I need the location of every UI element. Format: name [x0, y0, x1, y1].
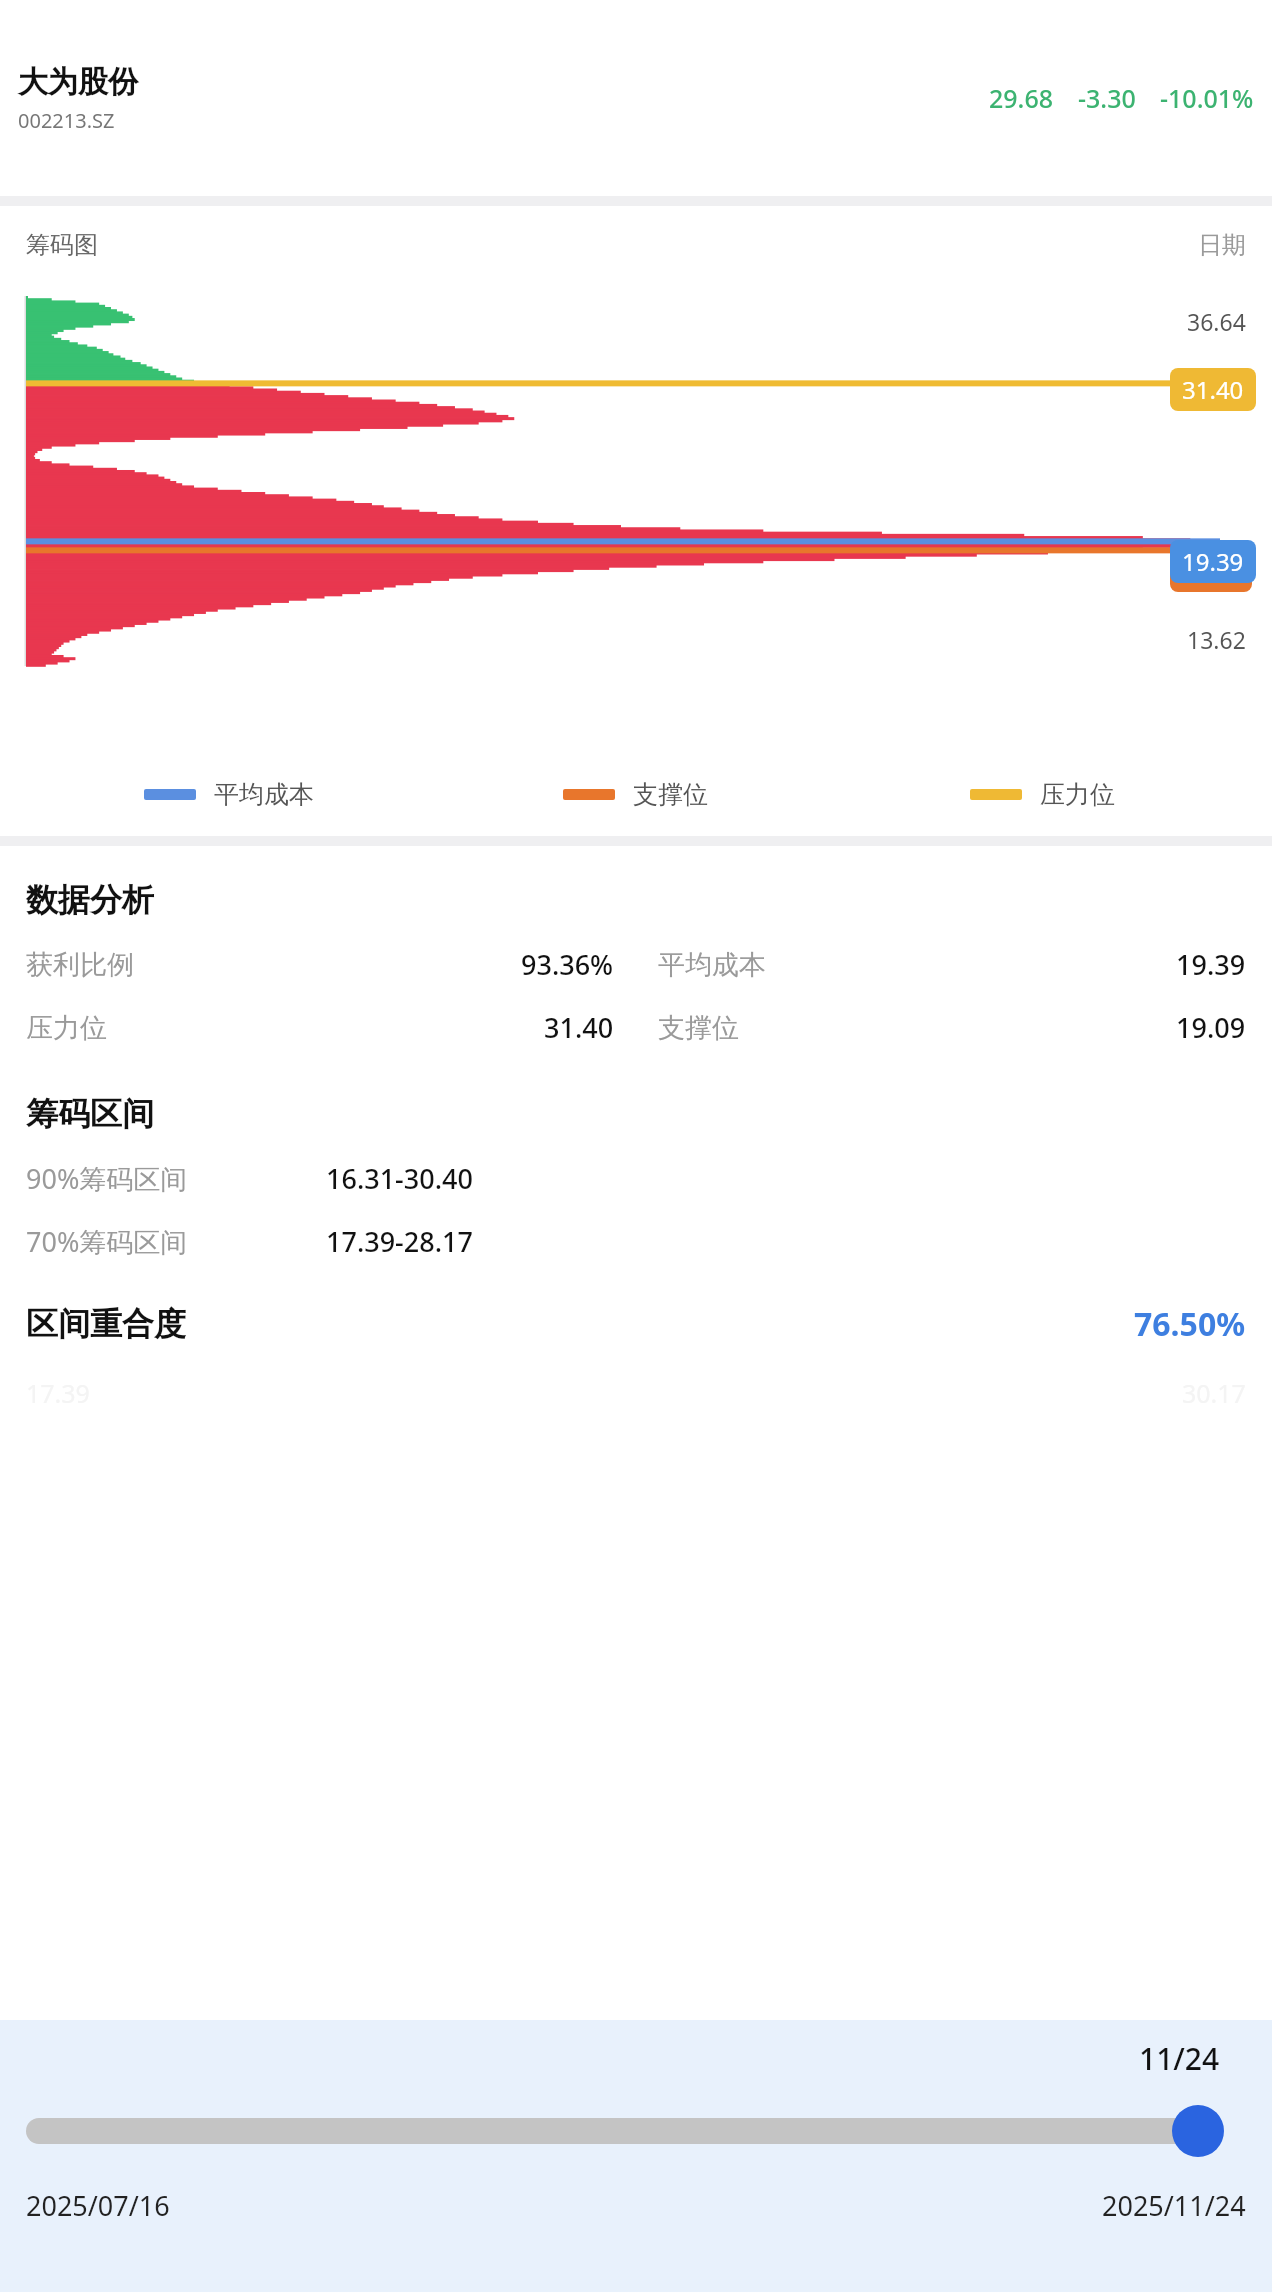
- staticText: -10.01%: [1160, 81, 1254, 115]
- staticText: 19.39: [1176, 946, 1246, 983]
- staticText: 支撑位: [658, 1011, 739, 1045]
- staticText: 36.64: [1187, 306, 1246, 337]
- staticText: 平均成本: [658, 948, 766, 982]
- staticText: 筹码图: [26, 230, 98, 260]
- staticText: 筹码区间: [26, 1094, 154, 1134]
- button[interactable]: Date slider: [26, 2101, 1246, 2161]
- staticText: 31.40: [1182, 373, 1244, 406]
- staticText: 13.62: [1187, 624, 1246, 655]
- staticText: 19.09: [1176, 1009, 1246, 1046]
- staticText: 区间重合度: [26, 1304, 186, 1344]
- button[interactable]: 压力位: [26, 1009, 614, 1046]
- staticText: 93.36%: [521, 946, 614, 983]
- button[interactable]: 平均成本: [26, 779, 432, 810]
- staticText: 29.68: [989, 81, 1054, 115]
- staticText: 002213.SZ: [18, 107, 115, 134]
- staticText: 30.17: [1182, 1376, 1246, 1410]
- button[interactable]: 90%筹码区间: [26, 1160, 1246, 1197]
- staticText: 76.50%: [1134, 1302, 1246, 1346]
- button[interactable]: 压力位: [839, 779, 1246, 810]
- staticText: 压力位: [1040, 779, 1115, 810]
- staticText: 17.39: [26, 1376, 90, 1410]
- staticText: 2025/07/16: [26, 2187, 170, 2224]
- staticText: 获利比例: [26, 948, 134, 982]
- staticText: 19.39: [1182, 545, 1244, 578]
- button[interactable]: 平均成本: [658, 946, 1246, 983]
- staticText: 16.31-30.40: [326, 1160, 473, 1197]
- staticText: 70%筹码区间: [26, 1223, 188, 1260]
- button[interactable]: 支撑位: [432, 779, 839, 810]
- staticText: 数据分析: [26, 880, 154, 920]
- staticText: 90%筹码区间: [26, 1160, 188, 1197]
- button[interactable]: 获利比例: [26, 946, 614, 983]
- staticText: 2025/11/24: [1102, 2187, 1246, 2224]
- staticText: 日期: [1198, 230, 1246, 260]
- button[interactable]: 70%筹码区间: [26, 1223, 1246, 1260]
- staticText: 17.39-28.17: [326, 1223, 473, 1260]
- staticText: 支撑位: [633, 779, 708, 810]
- staticText: -3.30: [1078, 81, 1136, 115]
- staticText: 压力位: [26, 1011, 107, 1045]
- staticText: 11/24: [1139, 2038, 1220, 2079]
- staticText: 大为股份: [18, 63, 138, 101]
- button[interactable]: 支撑位: [658, 1009, 1246, 1046]
- staticText: 31.40: [544, 1009, 614, 1046]
- staticText: 平均成本: [214, 779, 314, 810]
